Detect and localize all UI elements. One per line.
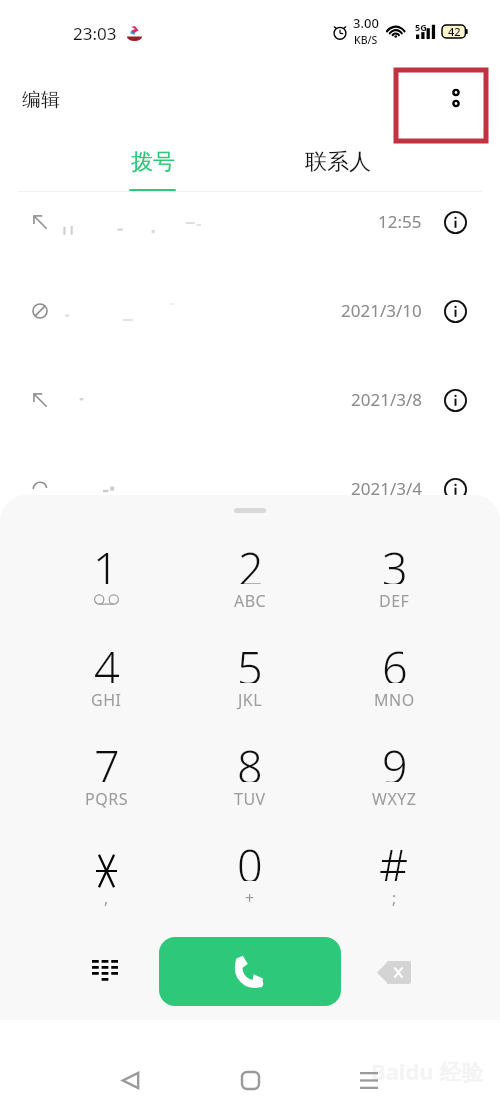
staticText: 5G xyxy=(415,21,427,33)
button[interactable]: 2021/3/4 xyxy=(0,444,500,533)
staticText: WXYZ xyxy=(372,788,417,810)
button[interactable]: 1 xyxy=(34,531,178,630)
button[interactable]: 2021/3/10 xyxy=(0,266,500,355)
button[interactable]: 12:55 xyxy=(0,177,500,266)
button[interactable]: 2021/3/8 xyxy=(0,355,500,444)
staticText: 2 xyxy=(238,538,264,584)
staticText: 3 xyxy=(382,538,408,584)
staticText: TUV xyxy=(234,788,266,810)
staticText: ; xyxy=(392,887,397,909)
staticText: 8 xyxy=(237,736,263,782)
staticText: 4 xyxy=(94,637,120,683)
staticText: 12:55 xyxy=(378,210,422,233)
button[interactable]: Home xyxy=(226,1056,274,1104)
staticText: 编辑 xyxy=(22,88,60,112)
button[interactable]: 5 xyxy=(178,630,322,729)
button[interactable]: Call details xyxy=(440,385,470,415)
staticText: JKL xyxy=(238,689,263,711)
staticText: 2021/3/8 xyxy=(351,388,422,411)
staticText: 9 xyxy=(382,736,408,782)
staticText: , xyxy=(104,887,109,909)
button[interactable]: , xyxy=(34,828,178,927)
staticText: MNO xyxy=(374,689,415,711)
button[interactable]: 0 xyxy=(178,828,322,927)
staticText: 5 xyxy=(237,637,263,683)
staticText: 0 xyxy=(237,835,263,881)
staticText: Baidu 经验 xyxy=(371,1056,484,1086)
staticText: 7 xyxy=(94,736,120,782)
staticText: + xyxy=(245,887,255,909)
button[interactable]: 拨号 xyxy=(60,140,245,192)
staticText: 6 xyxy=(382,637,408,683)
button[interactable]: Call details xyxy=(440,296,470,326)
button[interactable]: Recents xyxy=(345,1056,393,1104)
staticText: 1 xyxy=(93,538,119,584)
staticText: 拨号 xyxy=(131,148,175,176)
staticText: 3.00 xyxy=(353,14,379,32)
button[interactable]: 6 xyxy=(322,630,466,729)
button[interactable]: More options xyxy=(437,79,475,117)
staticText: KB/S xyxy=(354,33,378,47)
staticText: 联系人 xyxy=(305,148,371,176)
button[interactable]: 2 xyxy=(178,531,322,630)
button[interactable]: Backspace xyxy=(371,949,417,995)
staticText: ABC xyxy=(234,590,267,612)
staticText: PQRS xyxy=(85,788,128,810)
button[interactable]: Call details xyxy=(440,207,470,237)
staticText: DEF xyxy=(379,590,410,612)
button[interactable]: 8 xyxy=(178,729,322,828)
button[interactable]: 编辑 xyxy=(14,80,68,120)
staticText: 42 xyxy=(448,24,461,39)
button[interactable]: 联系人 xyxy=(245,140,430,192)
staticText: # xyxy=(379,835,409,881)
staticText: 2021/3/10 xyxy=(341,299,422,322)
staticText: GHI xyxy=(91,689,122,711)
staticText: 2021/3/4 xyxy=(351,477,422,500)
button[interactable]: Call details xyxy=(440,474,470,504)
button[interactable]: 3 xyxy=(322,531,466,630)
button[interactable]: Call xyxy=(159,937,341,1006)
button[interactable]: Back xyxy=(106,1056,154,1104)
button[interactable]: Keypad xyxy=(82,949,128,995)
button[interactable]: 4 xyxy=(34,630,178,729)
button[interactable]: 7 xyxy=(34,729,178,828)
button[interactable]: 9 xyxy=(322,729,466,828)
button[interactable]: # xyxy=(322,828,466,927)
staticText: 23:03 xyxy=(73,22,117,45)
